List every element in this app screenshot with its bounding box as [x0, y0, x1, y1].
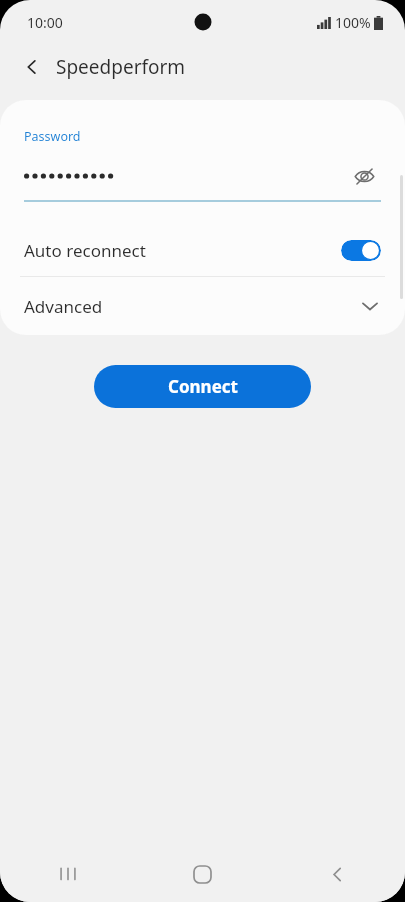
staticText: Password	[24, 128, 81, 145]
staticText: Advanced	[24, 295, 359, 318]
button[interactable]: Auto reconnect toggle	[341, 240, 381, 261]
button[interactable]: Connect	[94, 365, 311, 408]
button[interactable]: Back	[270, 846, 405, 902]
button[interactable]: Back	[14, 49, 50, 85]
button[interactable]: Auto reconnect	[0, 224, 405, 276]
button[interactable]: Recent apps	[0, 846, 135, 902]
staticText: 100%	[335, 13, 371, 32]
button[interactable]: Home	[135, 846, 270, 902]
staticText: Auto reconnect	[24, 239, 341, 262]
button[interactable]: Password	[0, 100, 405, 202]
staticText: Connect	[168, 375, 238, 398]
button[interactable]: Advanced	[0, 277, 405, 335]
button[interactable]: Show password	[347, 159, 381, 193]
staticText: 10:00	[27, 13, 63, 32]
staticText: Speedperform	[56, 54, 186, 80]
